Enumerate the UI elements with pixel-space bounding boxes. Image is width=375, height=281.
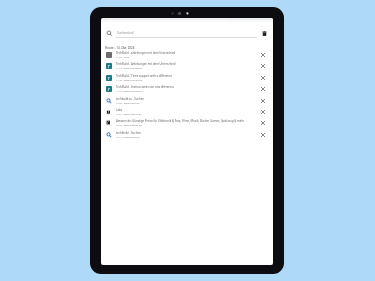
staticText: TechBuild - anleitungen mit dem Untersch… — [116, 51, 176, 55]
staticText: Suchverlauf — [117, 31, 134, 35]
button[interactable]: Remove from history — [258, 107, 267, 116]
button[interactable]: r — [101, 60, 273, 71]
staticText: 10:57 · www.amazon.de — [116, 113, 142, 116]
staticText: 11:02 · Seite — [116, 56, 129, 59]
button[interactable]: techförde - Suchen — [101, 129, 273, 140]
staticText: 11:09 · www.techbuild.es — [116, 90, 143, 93]
staticText: Amazon.de: Günstige Preise für Elektroni… — [116, 119, 245, 123]
button[interactable]: r — [101, 72, 273, 83]
button[interactable]: Labs — [101, 106, 273, 117]
button[interactable]: Remove from history — [258, 61, 267, 70]
button[interactable]: Remove from history — [258, 84, 267, 93]
button[interactable]: techbuild.es - Suchen — [101, 95, 273, 106]
staticText: r — [108, 75, 110, 81]
staticText: TechBuild - Instrucciones con una difere… — [116, 85, 174, 89]
staticText: r — [108, 86, 110, 92]
button[interactable]: Remove from history — [258, 96, 267, 105]
staticText: TechBuild - Tiene support with a differe… — [116, 74, 173, 78]
staticText: techförde - Suchen — [116, 131, 141, 135]
staticText: 11:15 · www.techbuild.es — [116, 67, 143, 70]
button[interactable]: Remove from history — [258, 50, 267, 59]
staticText: 10:55 · www.bing.com — [116, 102, 140, 105]
button[interactable]: r — [101, 83, 273, 94]
staticText: r — [108, 63, 110, 69]
button[interactable]: Remove from history — [258, 73, 267, 82]
staticText: TechBuild - Anleitungen mit dem Untersch… — [116, 62, 176, 66]
staticText: Labs — [116, 108, 123, 112]
button[interactable]: Delete history — [260, 29, 268, 37]
staticText: 11:45 · www.techbuild.es — [116, 79, 143, 82]
staticText: Heute – 14. Okt. 2024 — [105, 46, 135, 50]
button[interactable]: TechBuild - anleitungen mit dem Untersch… — [101, 49, 273, 60]
button[interactable]: Amazon.de: Günstige Preise für Elektroni… — [101, 117, 273, 128]
staticText: 10:45 · www.amazon.de — [116, 124, 142, 127]
button[interactable]: Search — [106, 30, 113, 37]
staticText: 10:18 · www.bing.com — [116, 136, 140, 139]
button[interactable]: Remove from history — [258, 118, 267, 127]
button[interactable]: Remove from history — [258, 130, 267, 139]
staticText: techbuild.es - Suchen — [116, 97, 144, 101]
